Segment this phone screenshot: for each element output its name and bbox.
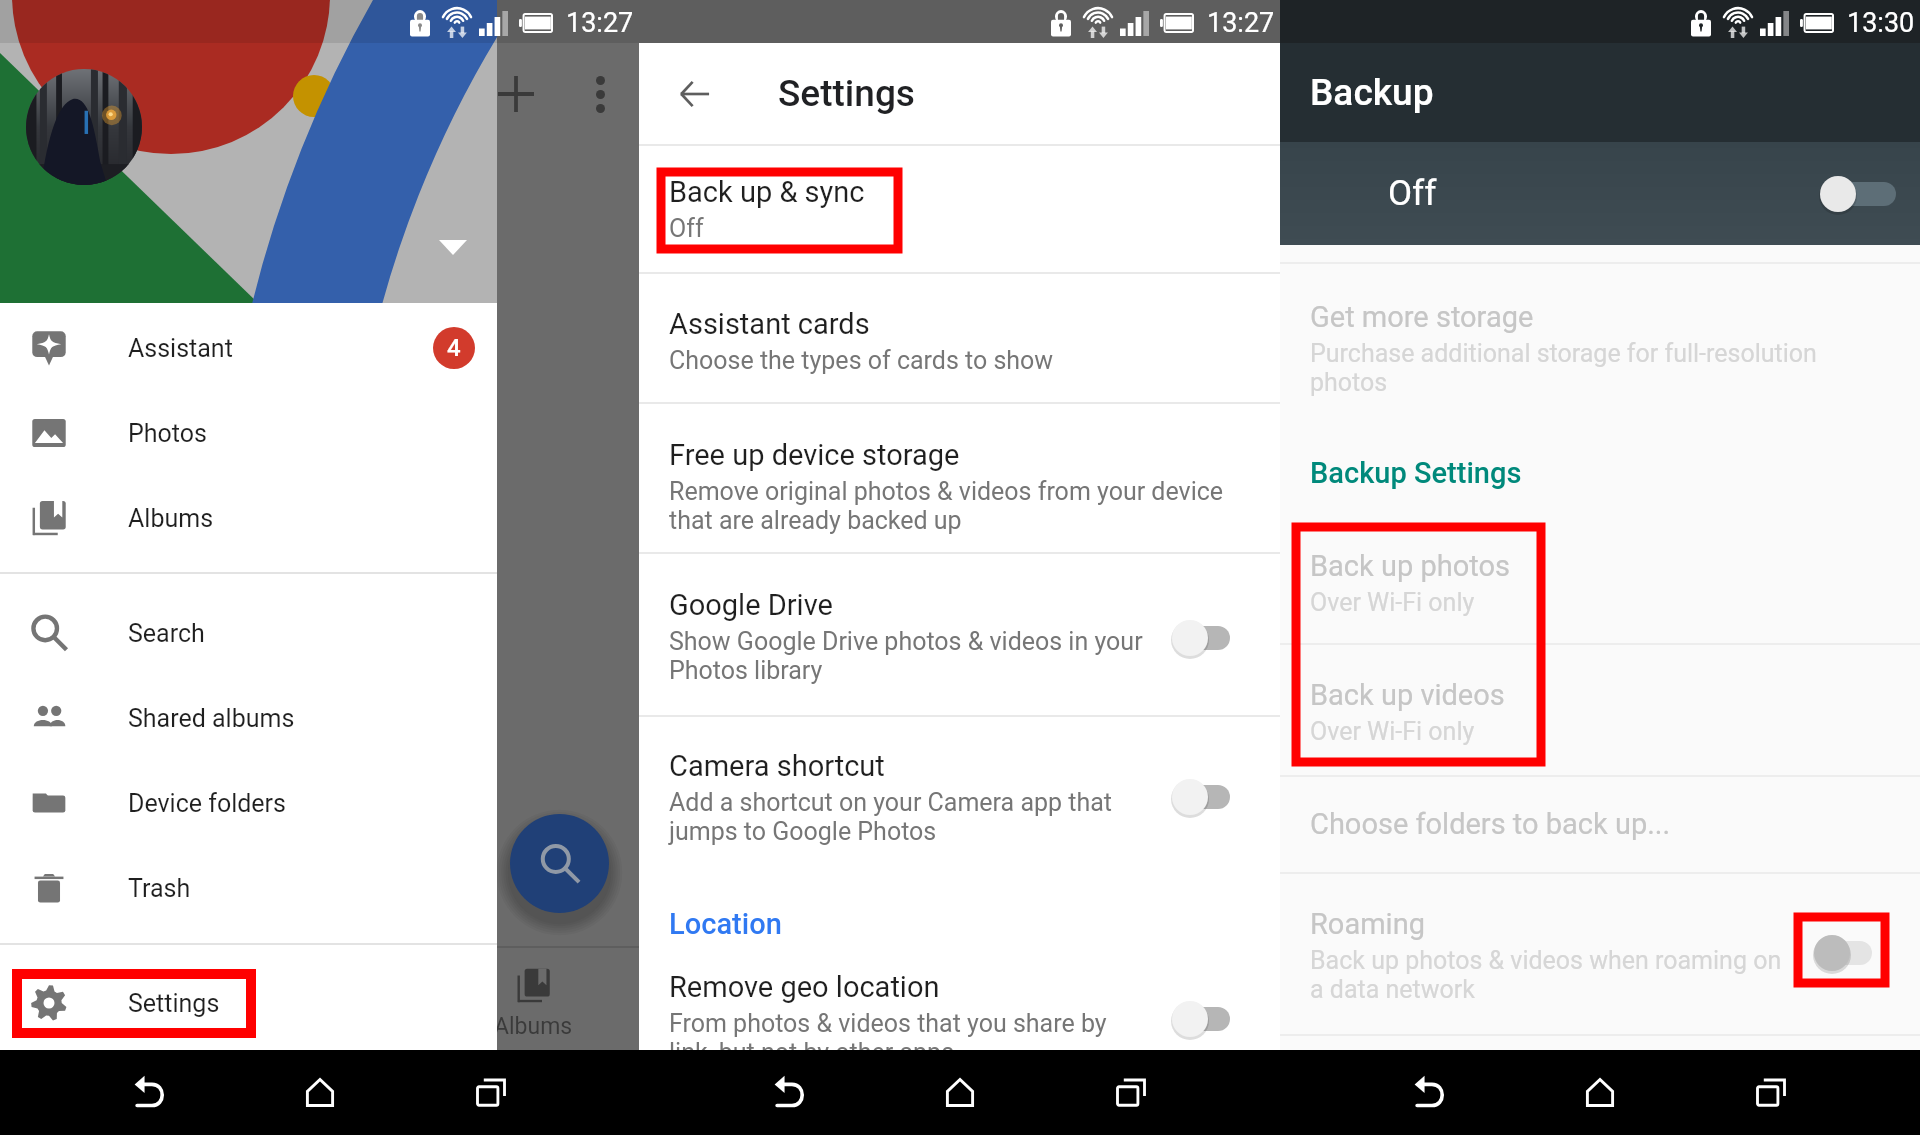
button[interactable]: Home xyxy=(1555,1050,1645,1135)
button[interactable]: Expand account list xyxy=(425,219,481,275)
staticText: Over Wi-Fi only xyxy=(1310,717,1475,746)
button[interactable]: Toggle Remove geo location xyxy=(1170,997,1230,1041)
staticText: Purchase additional storage for full-res… xyxy=(1310,339,1817,368)
staticText: Backup Settings xyxy=(1310,456,1522,490)
button[interactable]: Get more storage xyxy=(1280,276,1920,426)
staticText: jumps to Google Photos xyxy=(669,817,937,846)
button[interactable]: Recents xyxy=(446,1050,536,1135)
staticText: Settings xyxy=(778,72,915,115)
button[interactable]: Shared albums xyxy=(0,688,497,748)
staticText: Photos library xyxy=(669,656,823,685)
staticText: Back up photos xyxy=(1310,549,1510,583)
button[interactable]: Albums xyxy=(0,488,497,548)
staticText: Remove geo location xyxy=(669,970,940,1004)
staticText: Get more storage xyxy=(1310,300,1534,334)
staticText: Choose folders to back up... xyxy=(1310,807,1671,841)
button[interactable]: Recents xyxy=(1086,1050,1176,1135)
staticText: 13:27 xyxy=(566,7,634,39)
button[interactable]: Settings xyxy=(0,973,497,1033)
staticText: Remove original photos & videos from you… xyxy=(669,477,1224,506)
button[interactable]: Toggle backup xyxy=(1818,172,1896,216)
button[interactable]: Search xyxy=(510,814,609,913)
button[interactable]: Account photo xyxy=(26,69,142,185)
staticText: Assistant cards xyxy=(669,307,870,341)
staticText: Choose the types of cards to show xyxy=(669,346,1054,375)
button[interactable]: Back up photos xyxy=(1280,525,1920,643)
button[interactable]: Back up videos xyxy=(1280,654,1920,775)
staticText: Add a shortcut on your Camera app that xyxy=(669,788,1113,817)
staticText: Show Google Drive photos & videos in you… xyxy=(669,627,1143,656)
button[interactable]: Roaming xyxy=(1280,883,1920,1034)
button[interactable]: Toggle Camera shortcut xyxy=(1170,775,1230,819)
button[interactable]: Choose folders to back up... xyxy=(1280,783,1920,872)
button[interactable]: Device folders xyxy=(0,773,497,833)
button[interactable]: Toggle Roaming xyxy=(1812,931,1872,975)
button[interactable]: Google Drive xyxy=(639,564,1280,715)
staticText: 4 xyxy=(447,334,461,362)
staticText: Settings xyxy=(128,989,220,1018)
staticText: Backup xyxy=(1310,71,1434,114)
staticText: Assistant xyxy=(128,334,233,363)
button[interactable]: Back up & sync xyxy=(639,151,1280,272)
staticText: Albums xyxy=(128,504,214,533)
staticText: From photos & videos that you share by xyxy=(669,1009,1107,1038)
button[interactable]: Back xyxy=(744,1050,834,1135)
staticText: a data network xyxy=(1310,975,1475,1004)
button[interactable]: Back xyxy=(1384,1050,1474,1135)
button[interactable]: Assistant xyxy=(0,318,497,378)
staticText: Google Drive xyxy=(669,588,833,622)
staticText: 13:30 xyxy=(1847,7,1915,39)
staticText: photos xyxy=(1310,368,1388,397)
button[interactable]: Albums xyxy=(462,948,604,1050)
staticText: Back up & sync xyxy=(669,175,865,209)
staticText: link, but not by other apps xyxy=(669,1038,955,1067)
staticText: Trash xyxy=(128,874,191,903)
staticText: that are already backed up xyxy=(669,506,962,535)
staticText: Roaming xyxy=(1310,907,1425,941)
button[interactable]: Trash xyxy=(0,858,497,918)
button[interactable]: More options xyxy=(571,65,629,123)
button[interactable]: Back xyxy=(665,65,723,123)
staticText: Over Wi-Fi only xyxy=(1310,588,1475,617)
staticText: Off xyxy=(1388,173,1437,214)
button[interactable]: Camera shortcut xyxy=(639,725,1280,885)
button[interactable]: Add xyxy=(487,65,545,123)
button[interactable]: Assistant cards xyxy=(639,283,1280,402)
button[interactable]: Home xyxy=(915,1050,1005,1135)
staticText: Shared albums xyxy=(128,704,295,733)
staticText: Camera shortcut xyxy=(669,749,885,783)
staticText: Back up photos & videos when roaming on xyxy=(1310,946,1782,975)
button[interactable]: Toggle Google Drive xyxy=(1170,616,1230,660)
button[interactable]: Off xyxy=(1280,142,1920,245)
button[interactable]: Recents xyxy=(1726,1050,1816,1135)
button[interactable]: Back xyxy=(104,1050,194,1135)
staticText: Location xyxy=(669,907,782,941)
staticText: 13:27 xyxy=(1207,7,1275,39)
staticText: Device folders xyxy=(128,789,286,818)
staticText: Search xyxy=(128,619,205,648)
button[interactable]: Home xyxy=(275,1050,365,1135)
staticText: Free up device storage xyxy=(669,438,960,472)
staticText: Photos xyxy=(128,419,207,448)
button[interactable]: Search xyxy=(0,603,497,663)
staticText: Back up videos xyxy=(1310,678,1505,712)
button[interactable]: Remove geo location xyxy=(639,946,1280,1106)
button[interactable]: Free up device storage xyxy=(639,414,1280,552)
button[interactable]: Photos xyxy=(0,403,497,463)
staticText: Albums xyxy=(494,1013,573,1040)
staticText: Off xyxy=(669,214,704,243)
